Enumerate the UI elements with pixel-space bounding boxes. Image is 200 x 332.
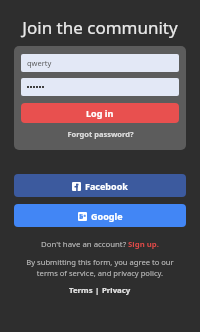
staticText: By submitting this form, you agree to ou… — [16, 257, 184, 278]
button[interactable] — [21, 78, 179, 96]
button[interactable]: Sign in with Facebook — [14, 174, 186, 197]
staticText: | — [93, 285, 102, 296]
staticText: Don't have an account? Sign up. — [41, 239, 159, 250]
button[interactable]: Terms — [69, 285, 93, 296]
button[interactable]: Privacy — [102, 285, 131, 296]
staticText: Google — [91, 210, 123, 222]
staticText: Log in — [86, 107, 114, 119]
other: Sign in with Google — [78, 212, 87, 221]
button[interactable]: qwerty — [21, 54, 179, 72]
staticText: Terms — [69, 285, 93, 296]
staticText: Forgot password? — [67, 129, 134, 139]
button[interactable]: Forgot password? — [21, 129, 179, 139]
button[interactable]: Sign in with Google — [14, 204, 186, 227]
button[interactable]: Don't have an account? Sign up. — [0, 239, 200, 250]
button[interactable]: Log in — [21, 103, 179, 123]
staticText: Privacy — [102, 285, 131, 296]
staticText: Join the community — [0, 16, 200, 39]
other: Sign in with Facebook — [72, 182, 81, 191]
staticText: Facebook — [85, 180, 128, 192]
staticText: qwerty — [27, 58, 52, 68]
